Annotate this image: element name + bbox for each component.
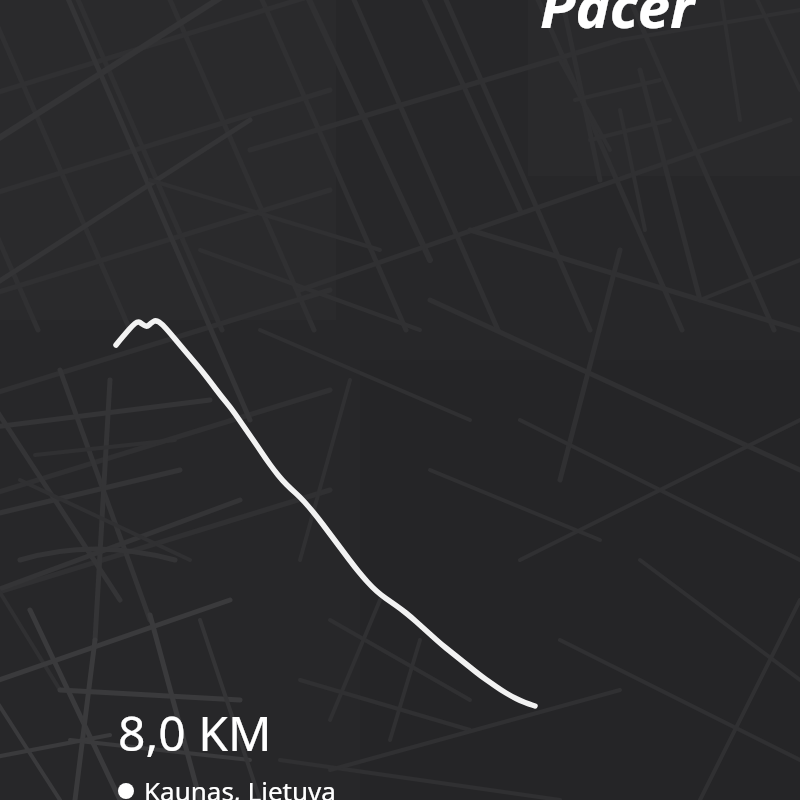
staticText: Pacer [540,0,695,45]
staticText: 8,0 KM [118,700,272,765]
button[interactable]: Kaunas, Lietuva [118,773,336,800]
button[interactable]: Pacer [540,0,695,45]
staticText: Kaunas, Lietuva [144,773,336,800]
